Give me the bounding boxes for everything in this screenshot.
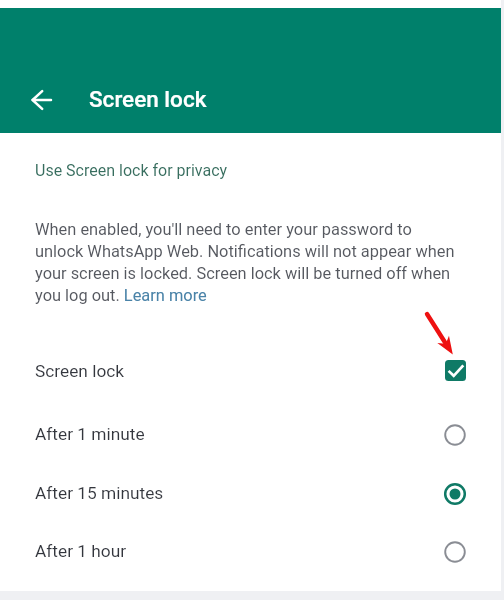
staticText: After 15 minutes (35, 483, 164, 503)
button[interactable]: Back (30, 88, 54, 112)
button[interactable]: After 1 hour (0, 522, 501, 581)
button[interactable]: Learn more (123, 286, 209, 307)
button[interactable]: Screen lock (0, 341, 501, 400)
staticText: After 1 minute (35, 424, 145, 444)
staticText: After 1 hour (35, 541, 127, 561)
staticText: Screen lock (89, 86, 207, 112)
staticText: Use Screen lock for privacy (35, 161, 228, 180)
button[interactable]: After 1 minute (0, 405, 501, 464)
staticText: When enabled, you'll need to enter your … (35, 220, 456, 305)
button[interactable]: After 15 minutes (0, 464, 501, 523)
staticText: Screen lock (35, 361, 125, 381)
